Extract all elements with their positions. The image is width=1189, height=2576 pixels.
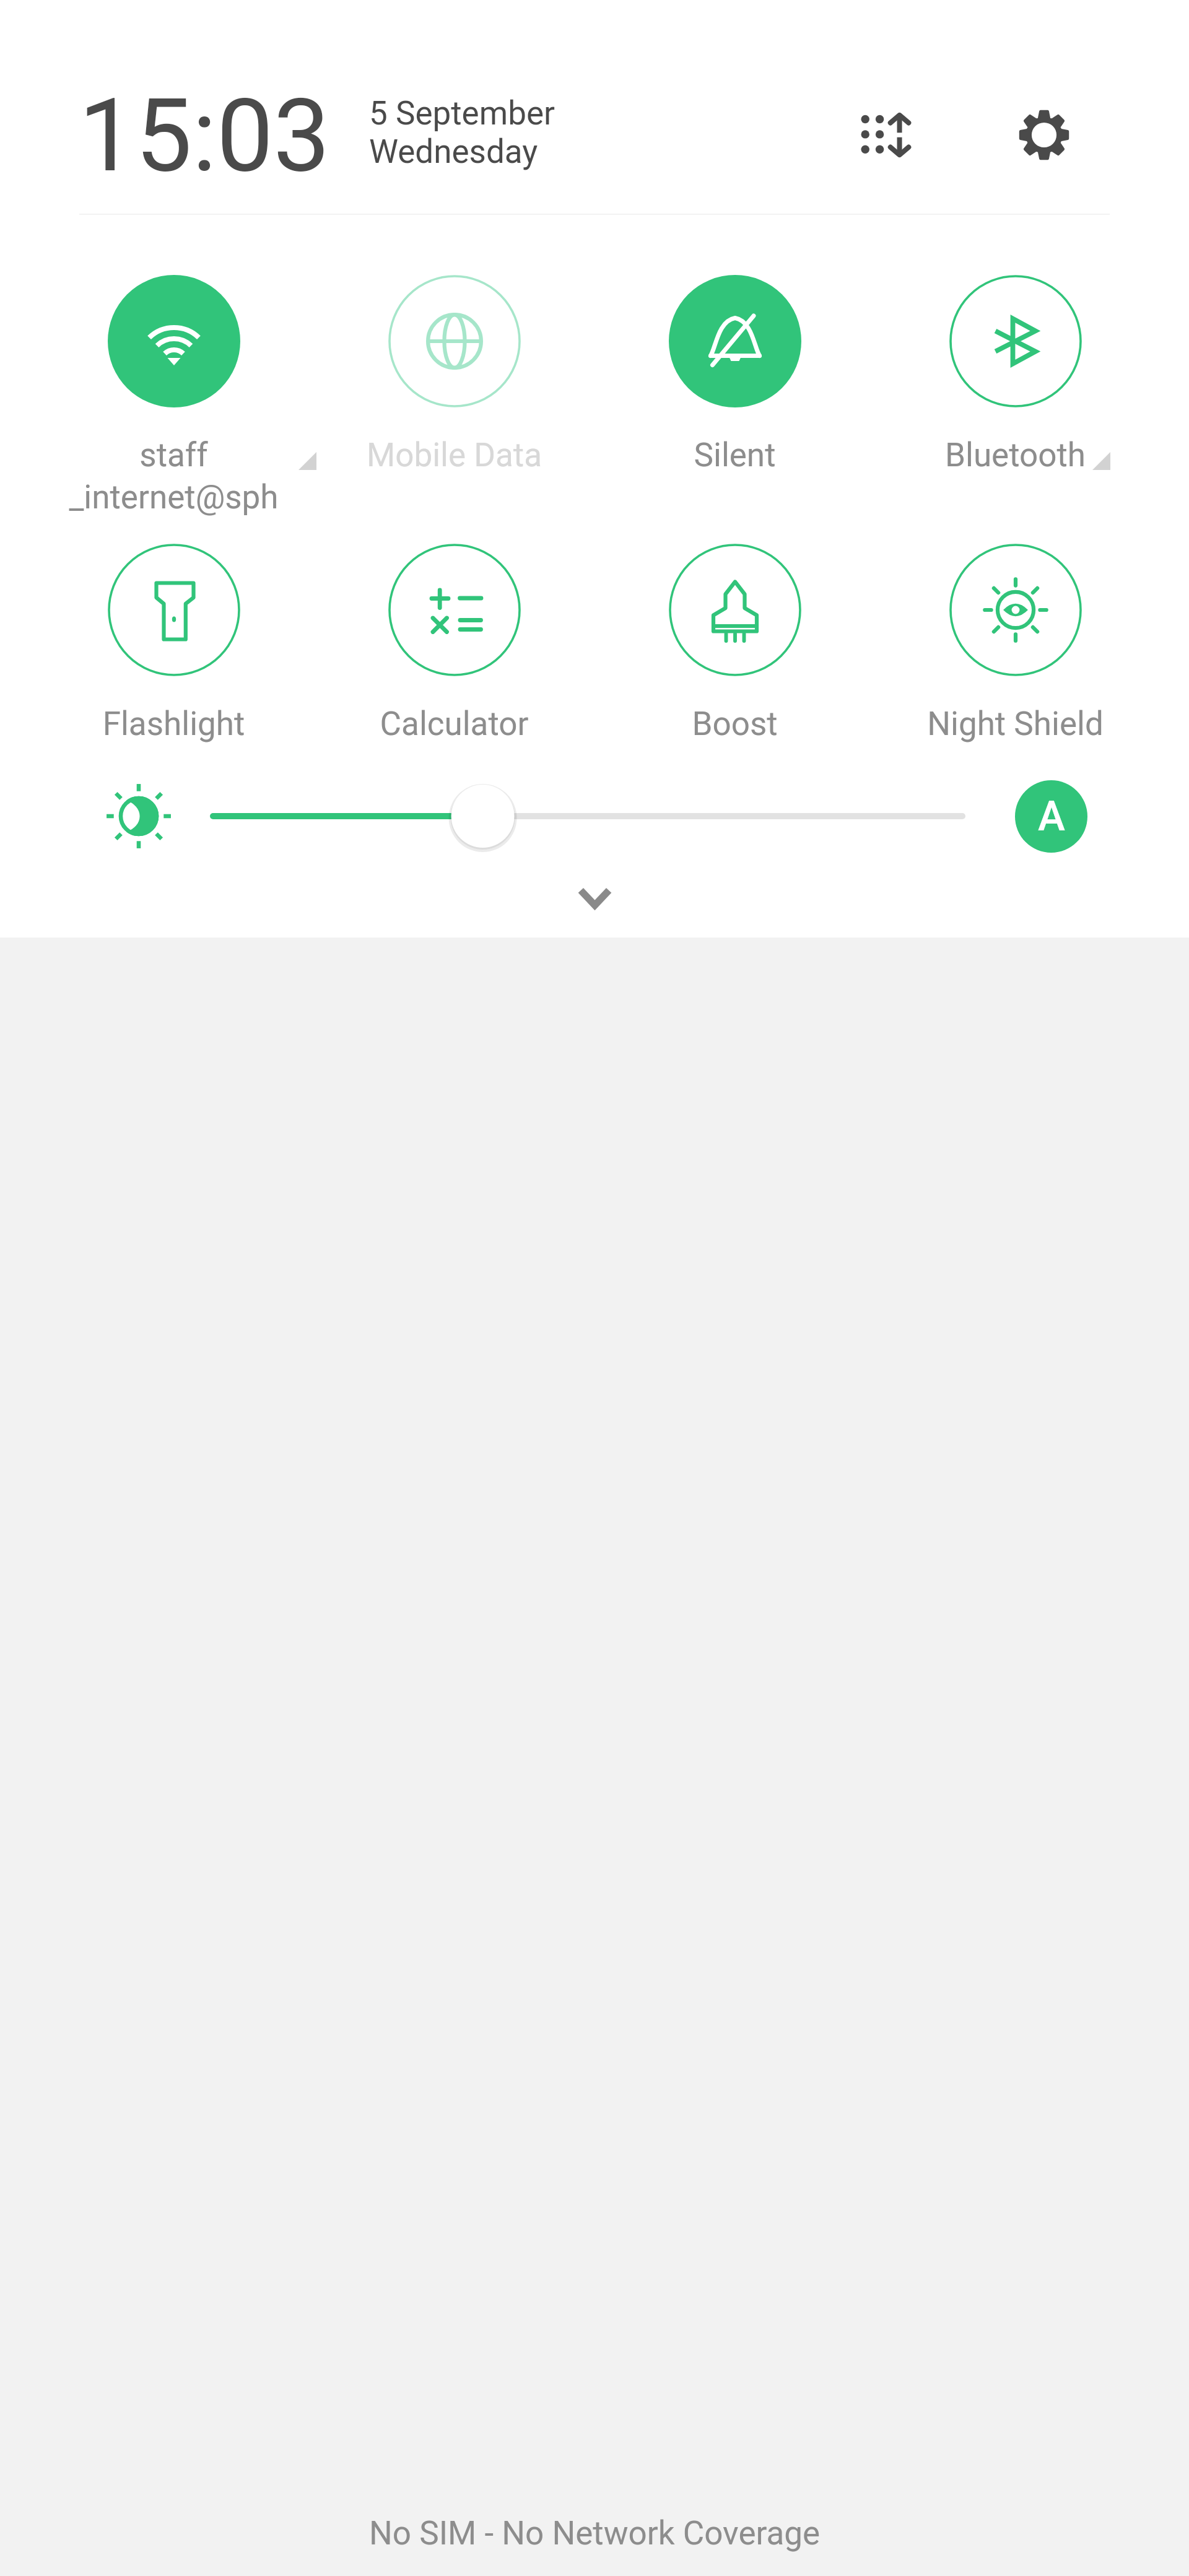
button[interactable]: Mobile Data (314, 275, 594, 474)
staticText: A (1038, 793, 1065, 840)
staticText: Wednesday (369, 133, 538, 171)
staticText: Silent (594, 436, 875, 474)
staticText: Bluetooth (875, 436, 1156, 474)
button[interactable]: Auto brightness (1015, 780, 1087, 853)
button[interactable]: staff _internet@sph (33, 275, 314, 516)
button[interactable]: Edit quick settings (836, 85, 935, 185)
button[interactable]: Boost (594, 544, 875, 743)
button[interactable]: Bluetooth (875, 275, 1156, 474)
button[interactable]: Silent (594, 275, 875, 474)
staticText: No SIM - No Network Coverage (369, 2514, 821, 2552)
button[interactable]: Settings (995, 85, 1094, 185)
staticText: Boost (594, 705, 875, 743)
staticText: staff _internet@sph (33, 436, 314, 516)
button[interactable]: Expand quick settings (545, 849, 644, 948)
staticText: Calculator (314, 705, 594, 743)
button[interactable]: Flashlight (33, 544, 314, 743)
staticText: Mobile Data (314, 436, 594, 474)
staticText: 15:03 (79, 77, 330, 195)
staticText: Night Shield (875, 705, 1156, 743)
button[interactable]: Calculator (314, 544, 594, 743)
staticText: Flashlight (33, 705, 314, 743)
button[interactable]: Night Shield (875, 544, 1156, 743)
staticText: 5 September (369, 94, 555, 133)
